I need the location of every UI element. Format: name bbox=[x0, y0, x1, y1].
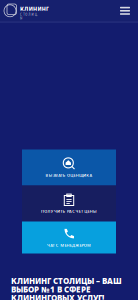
button[interactable]: ЧАТ С МЕНЕДЖЕРОМ bbox=[22, 221, 116, 253]
staticText: ВЫЗВАТЬ ОЦЕНЩИКА bbox=[45, 173, 92, 178]
staticText: ВЫБОР №1 В СФЕРЕ bbox=[11, 284, 91, 295]
button[interactable]: Menu bbox=[115, 4, 138, 18]
button[interactable]: ВЫЗВАТЬ ОЦЕНЩИКА bbox=[22, 149, 116, 185]
button[interactable]: КЛИНИНГ bbox=[0, 4, 52, 18]
staticText: КЛИНИНГ СТОЛИЦЫ – ВАШ bbox=[11, 275, 122, 286]
staticText: ЧАТ С МЕНЕДЖЕРОМ bbox=[47, 243, 91, 248]
staticText: КЛИНИНГОВЫХ УСЛУГ! bbox=[11, 293, 104, 300]
staticText: СТОЛИЦЫ bbox=[20, 13, 40, 16]
button[interactable]: ПОЛУЧИТЬ РАСЧЕТ ЦЕНЫ bbox=[22, 185, 116, 221]
staticText: КЛИНИНГ bbox=[20, 5, 49, 12]
staticText: ПОЛУЧИТЬ РАСЧЕТ ЦЕНЫ bbox=[41, 209, 97, 214]
